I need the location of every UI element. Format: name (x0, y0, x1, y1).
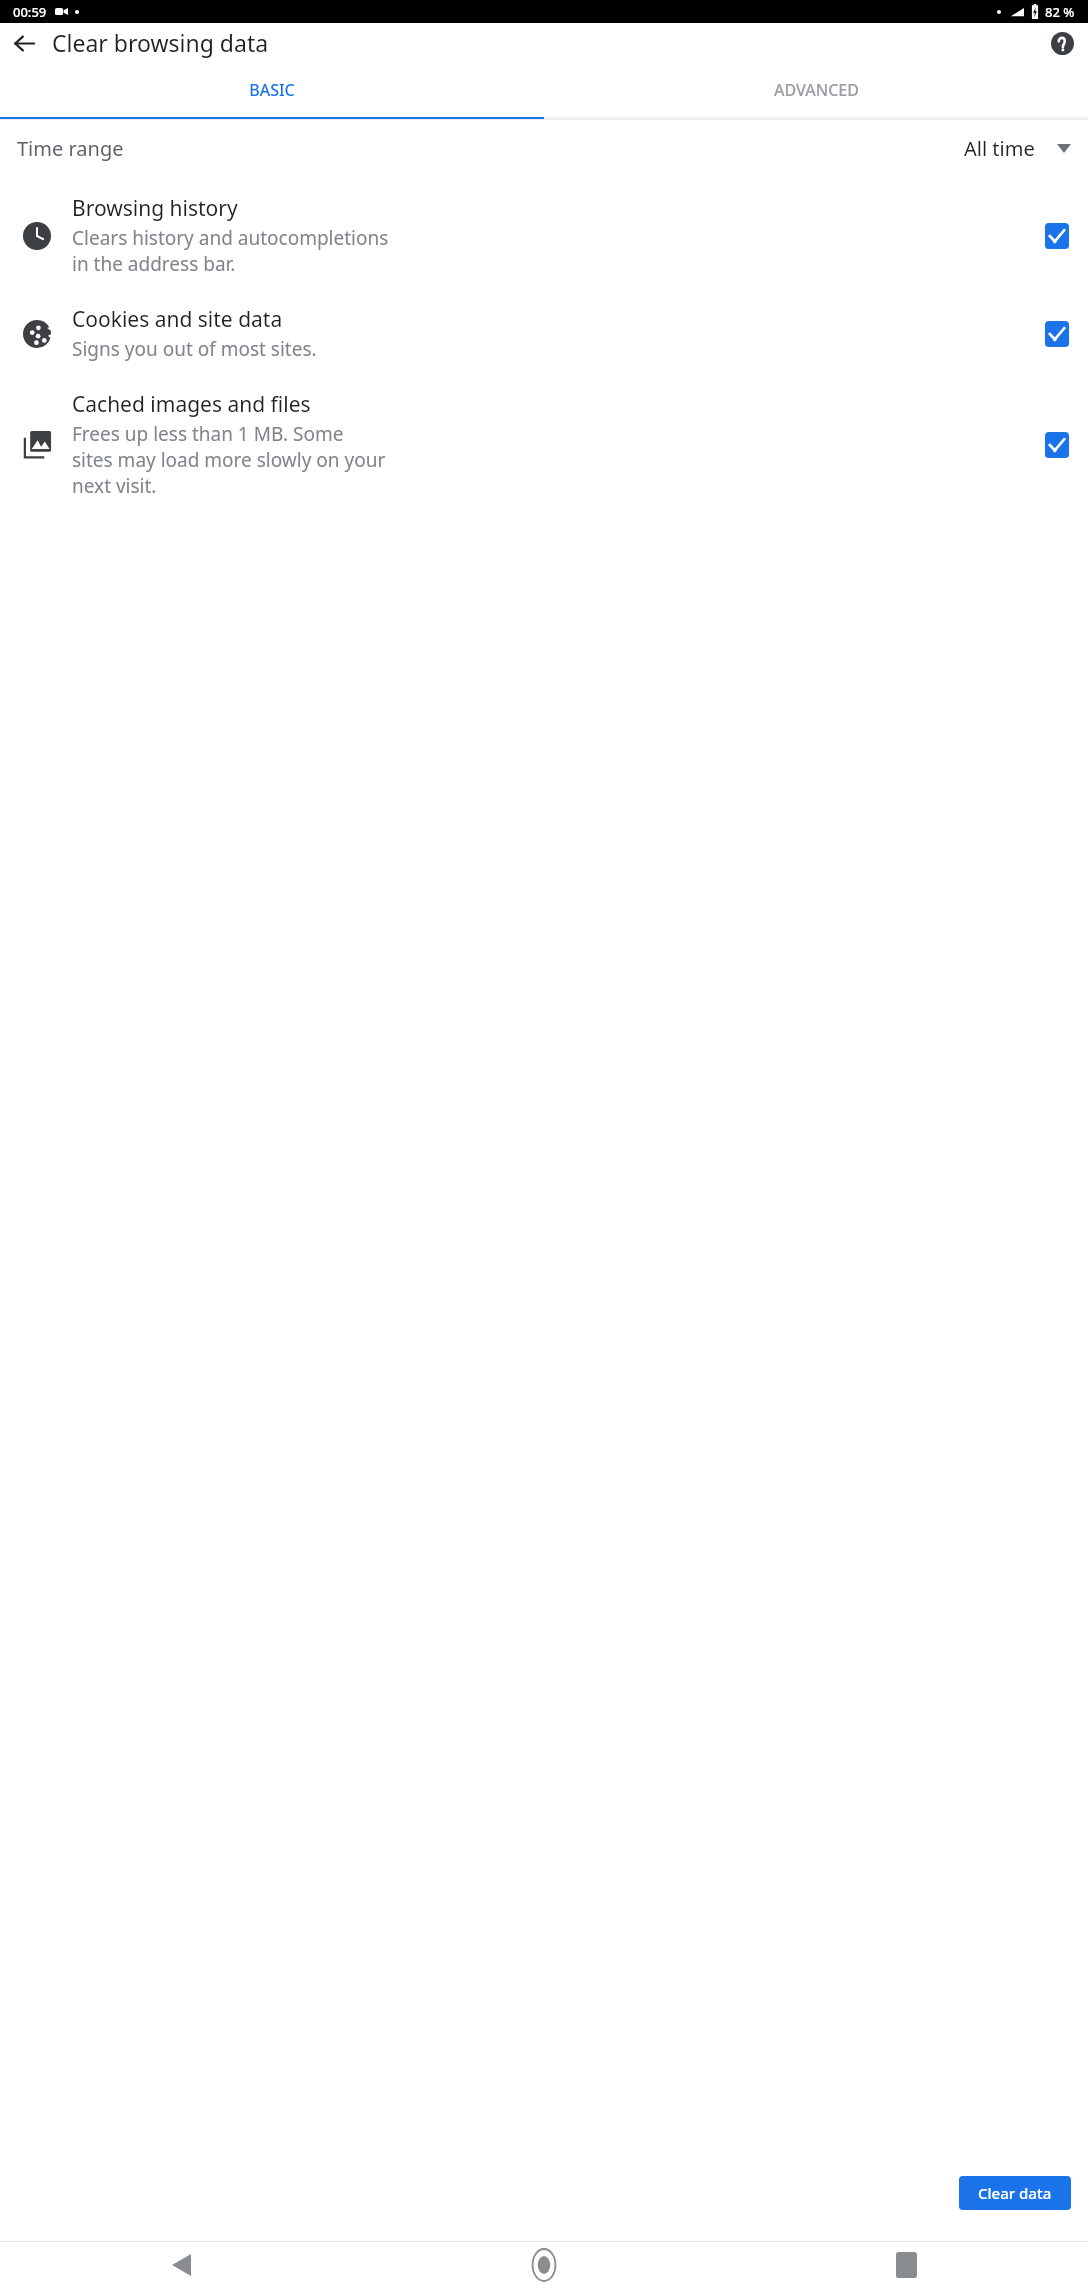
button[interactable]: ADVANCED (544, 62, 1088, 117)
button[interactable]: Recent apps (725, 2242, 1088, 2288)
staticText: 00:59 (13, 3, 47, 21)
staticText: All time (964, 135, 1035, 162)
button[interactable]: BASIC (0, 62, 544, 117)
staticText: Clears history and autocompletions in th… (72, 225, 389, 277)
staticText: ADVANCED (774, 79, 859, 101)
staticText: Cookies and site data (72, 305, 283, 334)
button[interactable]: Cached images and files (1043, 431, 1071, 459)
button[interactable]: Clear data (959, 2176, 1071, 2210)
staticText: BASIC (249, 79, 295, 101)
button[interactable]: Cookies and site data (1043, 320, 1071, 348)
staticText: Cached images and files (72, 390, 311, 419)
button[interactable]: Time range (0, 120, 1088, 176)
button[interactable]: Home (362, 2242, 725, 2288)
button[interactable]: Back (0, 2242, 362, 2288)
button[interactable]: Browsing history (0, 176, 1088, 279)
button[interactable]: Cached images and files (0, 364, 1088, 501)
button[interactable]: Browsing history (1043, 222, 1071, 250)
button[interactable]: Help (1044, 25, 1080, 61)
staticText: Clear browsing data (52, 27, 269, 58)
staticText: Browsing history (72, 194, 238, 223)
button[interactable]: Back (6, 25, 42, 61)
staticText: Time range (17, 135, 124, 162)
staticText: Signs you out of most sites. (72, 336, 317, 362)
staticText: Clear data (978, 2183, 1052, 2203)
button[interactable]: Cookies and site data (0, 279, 1088, 364)
staticText: Frees up less than 1 MB. Some sites may … (72, 421, 386, 499)
staticText: 82 % (1045, 3, 1075, 21)
